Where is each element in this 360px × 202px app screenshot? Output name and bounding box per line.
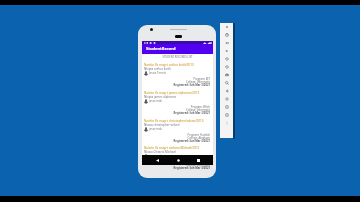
button[interactable]: Home xyxy=(172,155,184,165)
button[interactable]: Home xyxy=(220,95,234,103)
button[interactable]: Rotate right xyxy=(220,63,234,71)
button[interactable]: Screenshot xyxy=(220,71,234,79)
button[interactable]: Nutrito Ya mugri: stefano Michael/2013 xyxy=(142,146,213,173)
button[interactable]: Close xyxy=(220,23,234,31)
staticText: Nkipta arthur keith xyxy=(144,67,171,71)
staticText: Registered: Sun Mar 3/2021 xyxy=(142,83,210,87)
button[interactable]: Volume up xyxy=(220,39,234,47)
staticText: StudentRecord xyxy=(146,46,176,51)
staticText: College: Informatic xyxy=(142,80,210,84)
staticText: Registered: Sun Mar 3/2021 xyxy=(142,139,210,143)
button[interactable]: Zoom xyxy=(220,79,234,87)
staticText: STUDENT RECORDS LIST xyxy=(142,55,213,59)
button[interactable]: Overview xyxy=(220,103,234,111)
button[interactable]: Recents xyxy=(192,155,204,165)
staticText: jesse mak xyxy=(149,127,162,131)
staticText: College: Abraham xyxy=(142,136,210,140)
staticText: Nutrito Ya mugri: christopher/wilson/201… xyxy=(144,119,204,123)
staticText: jesse mak xyxy=(149,154,162,158)
staticText: Jessie Terrett xyxy=(149,71,166,75)
staticText: Nutrito Ya mugri: arthur keith/2013 xyxy=(144,63,194,67)
button[interactable]: More xyxy=(220,119,234,127)
button[interactable]: StudentRecord xyxy=(142,44,213,54)
staticText: Nkasa christopher wilson xyxy=(144,123,180,127)
staticText: Nutrito Ya mugri: james alphonse/2013 xyxy=(144,91,200,95)
button[interactable]: Back xyxy=(151,155,163,165)
button[interactable]: Nutrito Ya mugri: arthur keith/2013 xyxy=(142,63,213,90)
staticText: Program: BIT xyxy=(142,77,210,81)
staticText: Program: BIT xyxy=(142,160,210,164)
button[interactable]: Volume down xyxy=(220,47,234,55)
staticText: jesse mak xyxy=(149,99,162,103)
staticText: Registered: Sun Mar 3/2021 xyxy=(142,166,210,170)
staticText: College: Informatic xyxy=(142,163,210,167)
staticText: College: Informatic xyxy=(142,108,210,112)
button[interactable]: Back xyxy=(220,87,234,95)
staticText: Registered: Sun Mar 3/2021 xyxy=(142,111,210,115)
staticText: Program: BFish xyxy=(142,105,210,109)
button[interactable]: Nutrito Ya mugri: james alphonse/2013 xyxy=(142,91,213,118)
staticText: Nkipta james alphonse xyxy=(144,95,177,99)
button[interactable]: Power xyxy=(220,31,234,39)
staticText: Program: Humble xyxy=(142,133,210,137)
staticText: Nkasa Ontario Michael xyxy=(144,150,176,154)
staticText: Nutrito Ya mugri: stefano Michael/2013 xyxy=(144,146,200,150)
button[interactable]: Fold xyxy=(220,111,234,119)
button[interactable]: Nutrito Ya mugri: christopher/wilson/201… xyxy=(142,119,213,146)
button[interactable]: Rotate left xyxy=(220,55,234,63)
